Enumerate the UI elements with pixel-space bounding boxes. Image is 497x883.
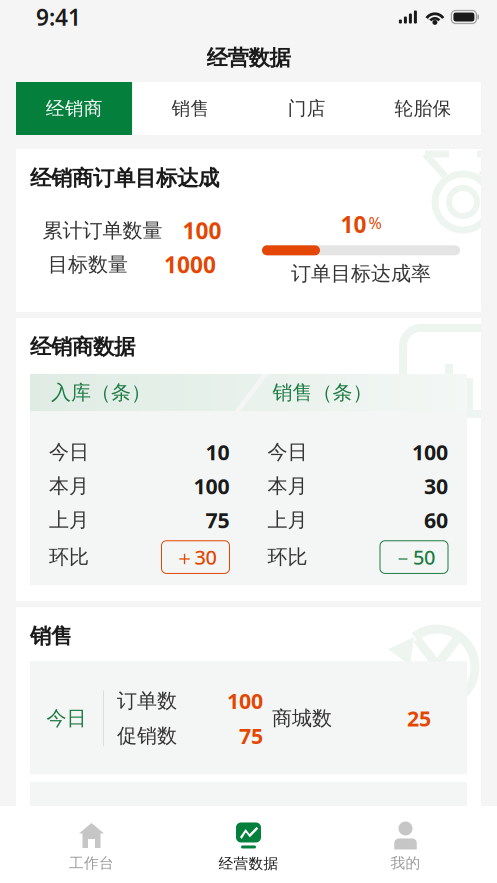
staticText: 本月	[46, 827, 86, 852]
staticText: 30	[424, 472, 448, 500]
staticText: 轮胎保	[394, 97, 451, 120]
staticText: 工作台	[69, 854, 114, 872]
staticText: 100	[193, 472, 229, 500]
staticText: 上月	[267, 508, 307, 532]
staticText: 销售	[171, 97, 209, 120]
staticText: 100	[227, 808, 263, 836]
staticText: 25	[407, 704, 431, 732]
button[interactable]: 门店	[248, 82, 365, 135]
staticText: 1000	[164, 249, 216, 280]
staticText: 经销商订单目标达成	[30, 165, 219, 191]
staticText: 销售（条）	[272, 380, 372, 405]
staticText: 本月	[49, 474, 89, 498]
staticText: 经营数据	[206, 45, 290, 71]
staticText: %	[368, 212, 381, 233]
staticText: 目标数量	[48, 252, 128, 277]
staticText: 我的	[390, 854, 420, 872]
staticText: 9:41	[36, 2, 81, 32]
button[interactable]: 经销商	[16, 82, 132, 135]
button[interactable]: 经营数据	[183, 806, 314, 883]
staticText: －50	[393, 544, 435, 570]
staticText: 100	[227, 687, 263, 715]
staticText: 销售	[30, 623, 72, 649]
staticText: 75	[239, 843, 263, 871]
staticText: 今日	[267, 440, 307, 464]
button[interactable]: 销售	[132, 82, 248, 135]
staticText: 本月	[267, 474, 307, 498]
staticText: 今日	[49, 440, 89, 464]
staticText: 100	[412, 438, 448, 466]
button[interactable]: 轮胎保	[365, 82, 481, 135]
staticText: 经销商数据	[30, 334, 135, 360]
staticText: 环比	[49, 545, 89, 569]
staticText: 经销商	[46, 97, 103, 120]
staticText: 75	[239, 722, 263, 750]
staticText: 经营数据	[218, 854, 278, 872]
staticText: 门店	[288, 97, 326, 120]
button[interactable]: 我的	[314, 806, 497, 883]
staticText: 订单数	[117, 688, 177, 713]
staticText: 100	[182, 215, 221, 246]
staticText: 75	[205, 506, 229, 534]
staticText: 25	[407, 825, 431, 853]
staticText: 10	[340, 209, 366, 239]
staticText: 今日	[46, 706, 86, 731]
staticText: ＋30	[174, 544, 216, 570]
staticText: 10	[205, 438, 229, 466]
staticText: 累计订单数量	[42, 218, 162, 243]
staticText: 商城数	[272, 706, 332, 731]
staticText: 环比	[267, 545, 307, 569]
staticText: 60	[424, 506, 448, 534]
staticText: 入库（条）	[51, 380, 151, 405]
staticText: 订单目标达成率	[291, 261, 431, 286]
staticText: 上月	[49, 508, 89, 532]
button[interactable]: 工作台	[0, 806, 183, 883]
staticText: 促销数	[117, 723, 177, 748]
